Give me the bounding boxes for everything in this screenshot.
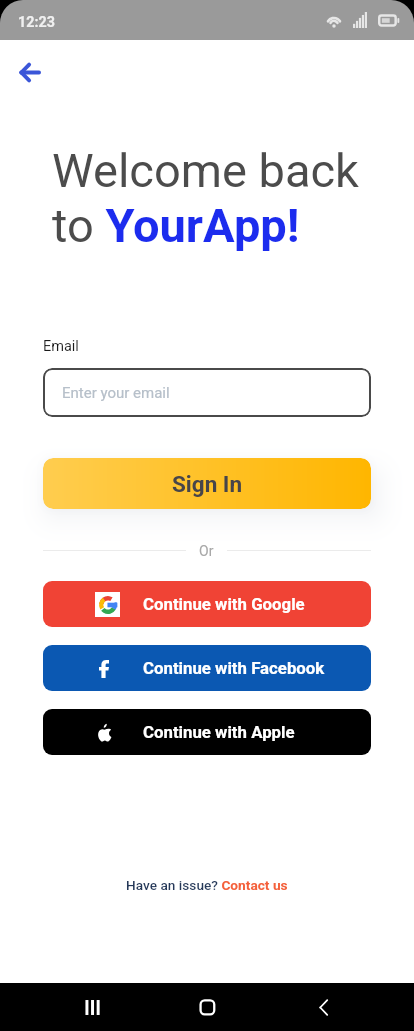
staticText: Sign In — [172, 471, 243, 497]
staticText: Continue with Google — [143, 594, 305, 614]
button[interactable]: Enter your email — [43, 368, 371, 417]
staticText: Enter your email — [62, 384, 170, 402]
staticText: 12:23 — [18, 14, 55, 31]
button[interactable]: Have an issue? Contact us — [0, 877, 414, 893]
button[interactable]: Back — [299, 983, 347, 1031]
staticText: Continue with Facebook — [143, 658, 325, 678]
staticText: Email — [43, 338, 79, 355]
staticText: Continue with Apple — [143, 722, 295, 742]
staticText: Have an issue? Contact us — [126, 877, 288, 893]
button[interactable]: Recent apps — [68, 983, 116, 1031]
staticText: Welcome back to YourApp! — [52, 143, 359, 254]
button[interactable]: Continue with Apple — [43, 709, 371, 755]
button[interactable]: Sign In — [43, 458, 371, 509]
staticText: Or — [199, 543, 214, 559]
button[interactable]: Continue with Facebook — [43, 645, 371, 691]
button[interactable]: Continue with Google — [43, 581, 371, 627]
button[interactable]: Back — [8, 50, 52, 94]
button[interactable]: Home — [183, 983, 231, 1031]
